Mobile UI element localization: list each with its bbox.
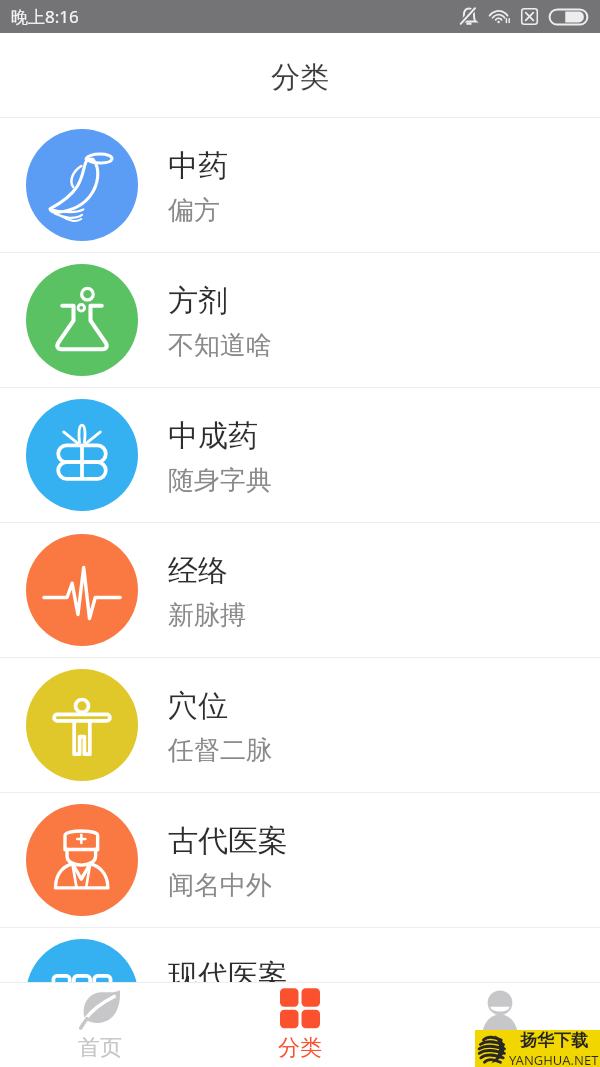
staticText: 古代医案 [168,822,288,860]
staticText: 偏方 [168,194,220,227]
staticText: 不知道啥 [168,329,272,362]
staticText: 穴位 [168,687,228,725]
staticText: 闻名中外 [168,869,272,902]
staticText: 晚上8:16 [11,5,79,28]
staticText: 中成药 [168,417,258,455]
staticText: 我的 [478,1034,522,1062]
staticText: 随身字典 [168,464,272,497]
button[interactable]: 中药 [0,118,600,252]
button[interactable]: 经络 [0,523,600,657]
staticText: 分类 [271,59,329,96]
button[interactable]: 中成药 [0,388,600,522]
button[interactable]: 首页 [0,983,200,1067]
staticText: 任督二脉 [168,734,272,767]
button[interactable]: 现代医案 [0,928,600,1062]
button[interactable]: 方剂 [0,253,600,387]
button[interactable]: 分类 [200,983,400,1067]
staticText: 现代医案 [168,957,288,995]
button[interactable]: 我的 [400,983,600,1067]
staticText: 扬华下载 [520,1030,588,1051]
staticText: 分类 [278,1034,322,1062]
staticText: 新脉搏 [168,599,246,632]
staticText: 方剂 [168,282,228,320]
button[interactable]: 古代医案 [0,793,600,927]
button[interactable]: 穴位 [0,658,600,792]
staticText: 中药 [168,147,228,185]
staticText: 首页 [78,1034,122,1062]
staticText: YANGHUA.NET [509,1051,599,1065]
staticText: 经络 [168,552,228,590]
